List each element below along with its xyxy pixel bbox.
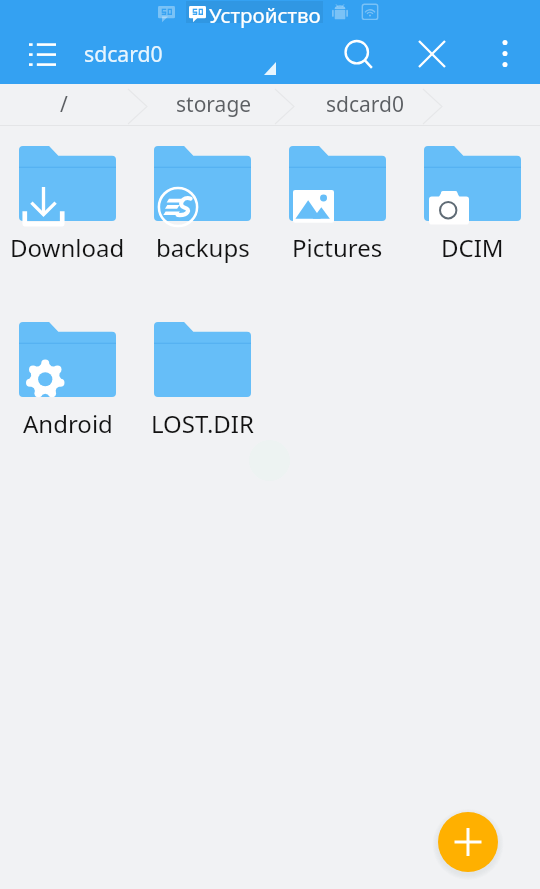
button[interactable]: Search [331, 27, 387, 83]
button[interactable]: backups [135, 140, 270, 260]
staticText: Android [23, 407, 113, 440]
button[interactable]: LOST.DIR [135, 316, 270, 436]
staticText: Download [10, 231, 125, 264]
staticText: sdcard0 [84, 39, 163, 68]
button[interactable]: sdcard0 [298, 84, 432, 125]
button[interactable]: Add [438, 812, 498, 872]
button[interactable]: DCIM [405, 140, 540, 260]
staticText: DCIM [441, 231, 504, 264]
staticText: Pictures [292, 231, 383, 264]
button[interactable]: Close [404, 26, 460, 82]
staticText: backups [156, 231, 250, 264]
button[interactable]: Android [0, 316, 135, 436]
button[interactable]: Menu [14, 25, 70, 81]
button[interactable]: Download [0, 140, 135, 260]
staticText: / [60, 90, 68, 119]
staticText: Устройство [209, 1, 321, 29]
button[interactable]: / [0, 84, 128, 125]
staticText: storage [176, 90, 252, 119]
staticText: sdcard0 [326, 90, 405, 119]
button[interactable]: Pictures [270, 140, 405, 260]
staticText: LOST.DIR [151, 407, 254, 440]
button[interactable]: More options [482, 30, 528, 76]
button[interactable]: storage [148, 84, 280, 125]
